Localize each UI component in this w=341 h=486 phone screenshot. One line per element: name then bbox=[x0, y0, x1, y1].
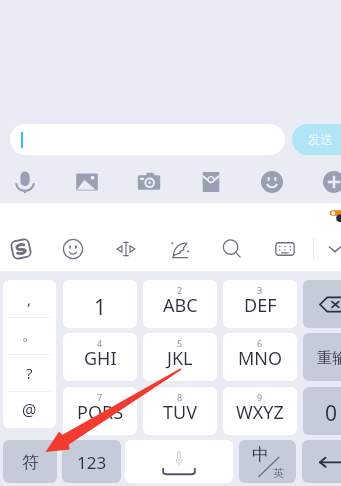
button[interactable]: Backspace bbox=[303, 280, 341, 328]
staticText: @ bbox=[22, 399, 37, 421]
staticText: 1 bbox=[94, 293, 107, 322]
staticText: WXYZ bbox=[236, 400, 284, 425]
staticText: JKL bbox=[167, 346, 193, 371]
button[interactable]: 5 bbox=[143, 333, 217, 381]
button[interactable]: Collapse keyboard bbox=[318, 232, 341, 266]
button[interactable]: 9 bbox=[223, 387, 297, 435]
button[interactable]: 3 bbox=[223, 280, 297, 328]
staticText: ABC bbox=[163, 293, 198, 318]
button[interactable]: More bbox=[317, 165, 341, 199]
button[interactable]: 8 bbox=[143, 387, 217, 435]
button[interactable]: Emoji bbox=[56, 232, 90, 266]
button[interactable]: 123 bbox=[62, 440, 121, 483]
button[interactable]: 0 bbox=[303, 387, 341, 435]
staticText: ? bbox=[26, 363, 33, 383]
staticText: 。 bbox=[22, 326, 37, 345]
button[interactable]: Enter bbox=[302, 440, 341, 483]
staticText: 4 bbox=[97, 337, 103, 349]
button[interactable]: 重输 bbox=[303, 333, 341, 381]
staticText: 重输 bbox=[317, 349, 341, 368]
staticText: PQRS bbox=[77, 400, 124, 425]
button[interactable]: 4 bbox=[63, 333, 137, 381]
staticText: 2 bbox=[177, 284, 183, 296]
staticText: 英 bbox=[273, 466, 284, 480]
button[interactable]: Handwriting bbox=[163, 232, 197, 266]
button[interactable]: Camera bbox=[132, 165, 166, 199]
staticText: 9 bbox=[257, 391, 263, 403]
staticText: , bbox=[27, 289, 32, 309]
button[interactable]: Red packet bbox=[194, 165, 228, 199]
staticText: GHI bbox=[84, 346, 117, 371]
button[interactable]: Voice message bbox=[8, 165, 42, 199]
staticText: 8 bbox=[177, 391, 183, 403]
button[interactable]: 符 bbox=[3, 440, 57, 483]
button[interactable] bbox=[10, 124, 285, 155]
button[interactable]: 。 bbox=[3, 317, 56, 354]
staticText: DEF bbox=[244, 293, 277, 318]
button[interactable]: 7 bbox=[63, 387, 137, 435]
staticText: 6 bbox=[257, 337, 263, 349]
button[interactable]: 中 bbox=[239, 440, 296, 483]
button[interactable]: Emoji bbox=[255, 165, 289, 199]
staticText: 符 bbox=[22, 452, 39, 473]
button[interactable]: Sogou menu bbox=[4, 232, 38, 266]
button[interactable]: Photo bbox=[70, 165, 104, 199]
staticText: MNO bbox=[238, 346, 283, 371]
button[interactable]: Move cursor bbox=[109, 232, 143, 266]
staticText: 7 bbox=[97, 391, 103, 403]
staticText: 发送 bbox=[308, 132, 333, 148]
button[interactable]: , bbox=[3, 280, 56, 317]
staticText: TUV bbox=[163, 400, 197, 425]
button[interactable]: 1 bbox=[63, 280, 137, 328]
button[interactable]: Search bbox=[215, 232, 249, 266]
button[interactable]: Keyboard layout bbox=[268, 232, 302, 266]
staticText: 123 bbox=[77, 451, 107, 474]
staticText: 5 bbox=[177, 337, 183, 349]
button[interactable]: 6 bbox=[223, 333, 297, 381]
staticText: 3 bbox=[257, 284, 263, 296]
button[interactable]: 发送 bbox=[292, 124, 341, 155]
button[interactable]: @ bbox=[3, 391, 56, 428]
button[interactable]: 2 bbox=[143, 280, 217, 328]
button[interactable]: Space bbox=[125, 440, 233, 483]
staticText: 中 bbox=[252, 444, 269, 465]
button[interactable]: ? bbox=[3, 354, 56, 391]
staticText: 0 bbox=[325, 399, 338, 428]
